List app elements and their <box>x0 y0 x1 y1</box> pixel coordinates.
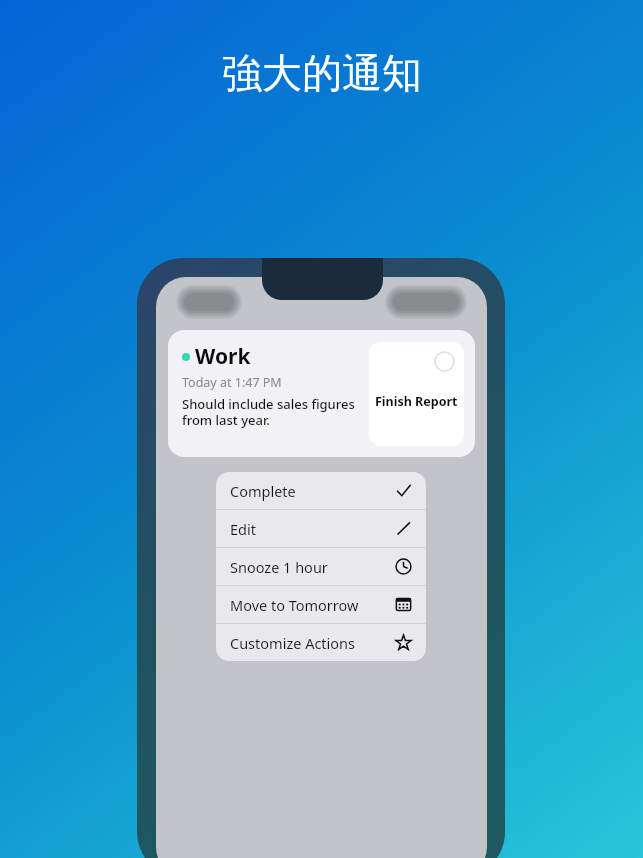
button[interactable]: Customize Actions <box>216 624 426 661</box>
staticText: Customize Actions <box>230 633 356 653</box>
staticText: Snooze 1 hour <box>230 557 328 577</box>
button[interactable]: Move to Tomorrow <box>216 586 426 623</box>
button[interactable]: Snooze 1 hour <box>216 548 426 585</box>
staticText: Move to Tomorrow <box>230 595 359 615</box>
button[interactable]: Edit <box>216 510 426 547</box>
staticText: Work <box>195 342 251 371</box>
staticText: Complete <box>230 481 296 501</box>
staticText: Edit <box>230 519 256 539</box>
staticText: Today at 1:47 PM <box>182 374 282 391</box>
staticText: Should include sales figures from last y… <box>182 395 355 428</box>
staticText: 強大的通知 <box>222 48 422 98</box>
button[interactable]: Complete <box>216 472 426 509</box>
button[interactable]: Work <box>168 330 475 457</box>
button[interactable]: Finish Report <box>369 342 464 446</box>
staticText: Finish Report <box>375 393 458 410</box>
